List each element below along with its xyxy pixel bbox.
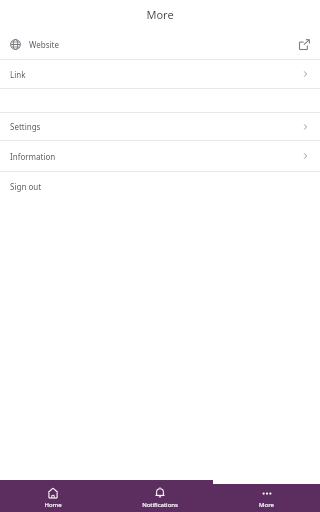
staticText: Website bbox=[29, 39, 60, 50]
staticText: More bbox=[146, 7, 174, 22]
button[interactable]: Sign out bbox=[0, 172, 320, 200]
other: Open website in new window bbox=[299, 39, 310, 50]
staticText: Sign out bbox=[10, 181, 42, 192]
staticText: Notifications bbox=[142, 501, 178, 509]
button[interactable]: Information bbox=[0, 141, 320, 171]
staticText: More bbox=[259, 501, 274, 509]
button[interactable]: Home bbox=[0, 484, 106, 512]
button[interactable]: Notifications bbox=[106, 484, 213, 512]
button[interactable]: Link bbox=[0, 60, 320, 88]
staticText: Link bbox=[10, 69, 26, 80]
staticText: Settings bbox=[10, 121, 41, 132]
button[interactable]: More bbox=[213, 484, 320, 512]
staticText: Information bbox=[10, 151, 56, 162]
button[interactable]: Website bbox=[0, 30, 320, 59]
staticText: Home bbox=[44, 501, 62, 509]
button[interactable]: Settings bbox=[0, 113, 320, 140]
